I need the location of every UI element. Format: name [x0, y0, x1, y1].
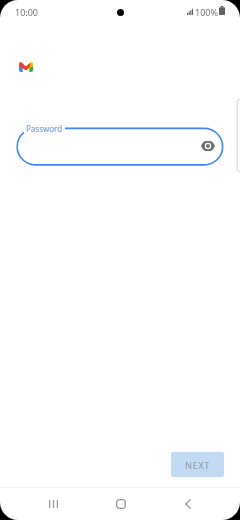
staticText: 10:00	[15, 6, 39, 18]
staticText: 100%	[195, 6, 218, 18]
button[interactable]: Home	[100, 487, 141, 520]
button[interactable]: Recent apps	[33, 487, 74, 520]
button[interactable]: NEXT	[171, 452, 224, 477]
staticText: Password	[26, 123, 63, 134]
button[interactable]: Back	[167, 487, 208, 520]
staticText: NEXT	[185, 459, 210, 471]
button[interactable]: Show password	[196, 134, 220, 158]
button[interactable]	[16, 127, 224, 168]
